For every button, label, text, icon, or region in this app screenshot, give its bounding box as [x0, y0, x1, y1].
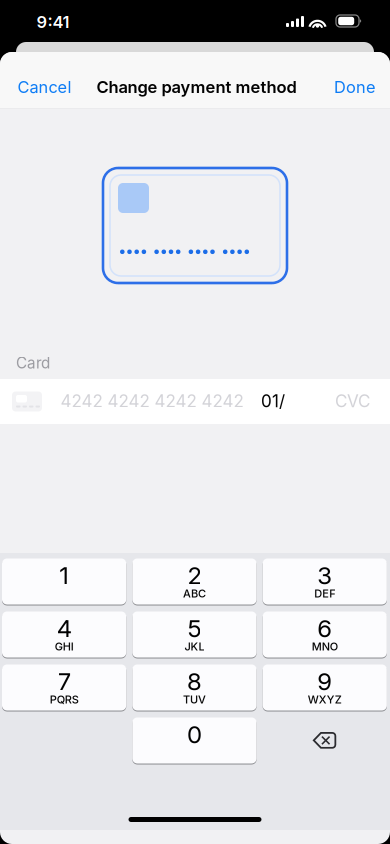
- staticText: 01/: [261, 391, 285, 411]
- button[interactable]: 0: [132, 717, 257, 764]
- button[interactable]: 9: [263, 664, 387, 711]
- button[interactable]: Cancel: [0, 52, 76, 96]
- staticText: PQRS: [50, 693, 79, 706]
- staticText: 9: [317, 667, 332, 696]
- button[interactable]: 7: [2, 664, 126, 711]
- staticText: Cancel: [17, 77, 71, 97]
- staticText: CVC: [335, 391, 370, 411]
- button[interactable]: 4: [2, 611, 126, 658]
- button[interactable]: 6: [263, 611, 387, 658]
- staticText: JKL: [184, 640, 204, 653]
- button[interactable]: 3: [263, 558, 387, 605]
- staticText: 0: [187, 720, 202, 749]
- staticText: 3: [317, 561, 332, 590]
- staticText: ABC: [183, 587, 206, 600]
- staticText: 7: [58, 667, 71, 696]
- staticText: 5: [187, 614, 201, 643]
- staticText: 4: [57, 614, 72, 643]
- button[interactable]: 1: [2, 558, 126, 605]
- staticText: 4242 4242 4242 4242: [60, 391, 243, 411]
- button[interactable]: Delete: [263, 717, 387, 763]
- staticText: DEF: [314, 587, 335, 600]
- staticText: MNO: [312, 640, 338, 653]
- button[interactable]: 5: [132, 611, 257, 658]
- button[interactable]: Done: [0, 52, 56, 96]
- staticText: GHI: [55, 640, 74, 653]
- staticText: Done: [334, 77, 376, 97]
- staticText: 2: [187, 561, 201, 590]
- staticText: WXYZ: [308, 693, 342, 706]
- button[interactable]: 2: [132, 558, 257, 605]
- staticText: 8: [187, 667, 202, 696]
- staticText: 1: [59, 561, 69, 590]
- staticText: Change payment method: [96, 77, 296, 97]
- staticText: TUV: [183, 693, 206, 706]
- staticText: Card: [16, 354, 50, 372]
- staticText: 9:41: [36, 12, 69, 32]
- button[interactable]: 8: [132, 664, 257, 711]
- staticText: 6: [317, 614, 332, 643]
